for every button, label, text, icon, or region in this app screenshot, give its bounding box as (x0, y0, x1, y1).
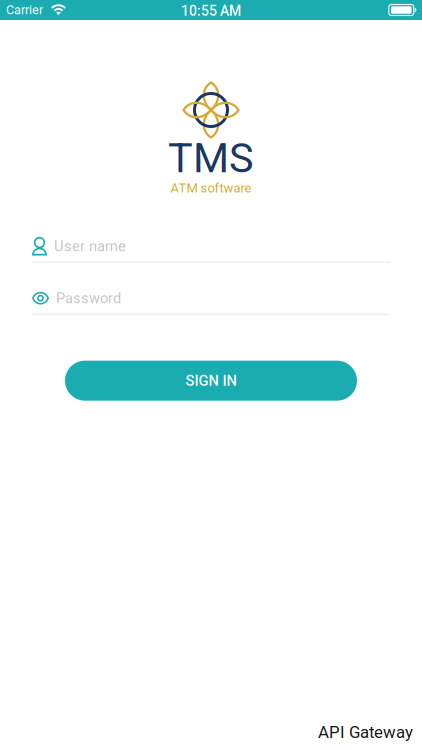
button[interactable]: SIGN IN (65, 361, 357, 401)
staticText: 10:55 AM (181, 3, 241, 19)
staticText: Carrier (6, 3, 43, 17)
staticText: SIGN IN (185, 372, 236, 389)
staticText: ATM software (170, 180, 251, 196)
staticText: TMS (168, 134, 254, 182)
staticText: Password (56, 290, 121, 307)
staticText: User name (54, 238, 126, 255)
staticText: API Gateway (318, 722, 413, 742)
